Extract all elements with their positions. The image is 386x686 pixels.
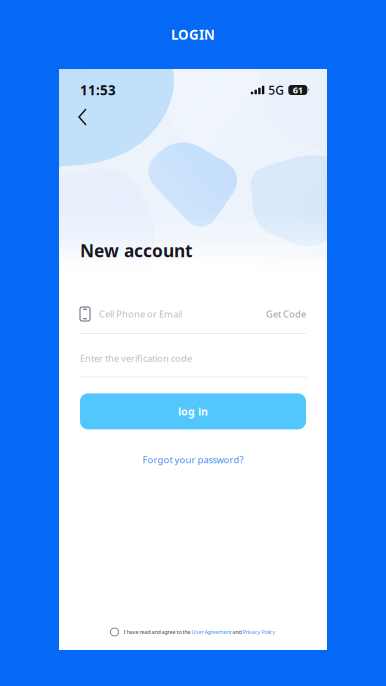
button[interactable]: I have read and agree to the [110,628,275,636]
button[interactable]: log in [80,393,306,429]
staticText: New account [80,239,193,262]
staticText: I have read and agree to the [123,628,191,636]
button[interactable]: Get Code [266,308,306,320]
staticText: log in [178,404,208,418]
button[interactable]: Back [70,103,96,131]
staticText: 5G [268,82,284,98]
staticText: User Agreement [191,628,231,636]
staticText: 61 [293,84,303,96]
staticText: 11:53 [80,81,116,99]
staticText: Get Code [266,308,306,320]
staticText: Privacy Policy [242,628,275,636]
staticText: Cell Phone or Email [99,308,182,320]
staticText: Enter the verification code [80,352,192,364]
staticText: and [231,628,242,636]
staticText: LOGIN [171,26,215,43]
staticText: Forgot your password? [142,453,243,466]
button[interactable]: Forgot your password? [59,453,327,466]
